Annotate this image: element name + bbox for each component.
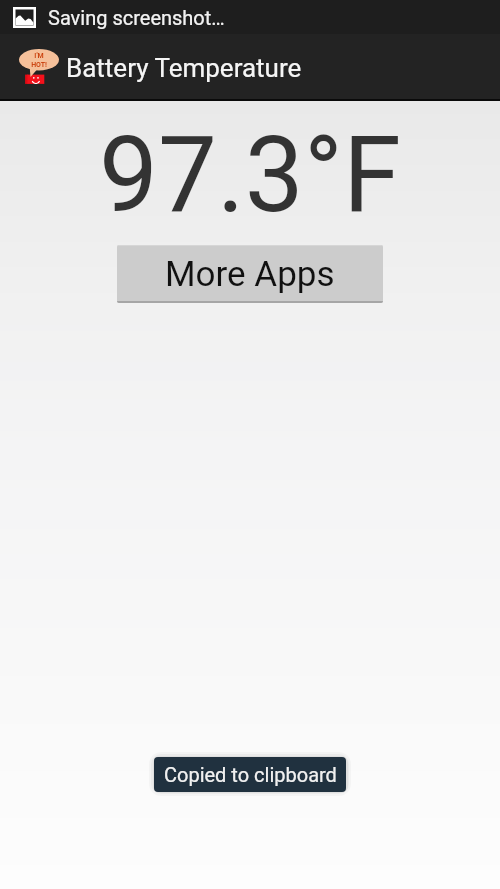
button[interactable]: I'M HOT! (0, 34, 310, 99)
staticText: Saving screenshot… (48, 6, 225, 29)
staticText: I'M HOT! (31, 52, 47, 68)
staticText: More Apps (165, 254, 335, 295)
other: Screenshot notification (13, 7, 36, 28)
button[interactable]: More Apps (117, 245, 383, 303)
staticText: Copied to clipboard (164, 763, 337, 786)
staticText: 97.3°F (99, 114, 401, 237)
staticText: Battery Temperature (66, 53, 302, 83)
